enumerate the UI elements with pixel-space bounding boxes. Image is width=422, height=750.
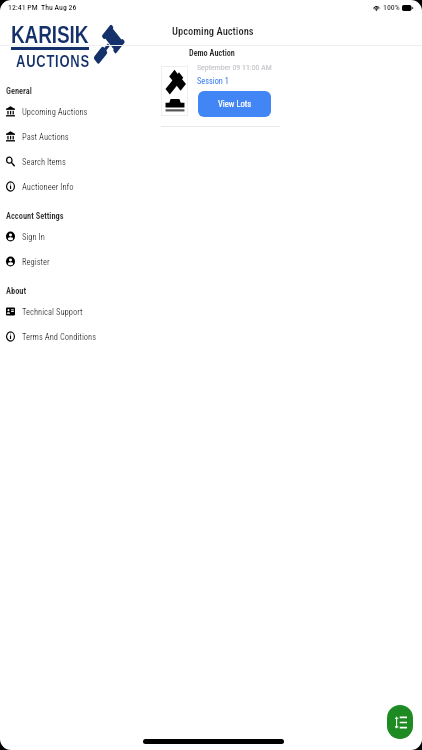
staticText: Auctioneer Info	[22, 182, 74, 192]
staticText: Terms And Conditions	[22, 332, 97, 342]
staticText: Technical Support	[22, 307, 83, 317]
button[interactable]: Sign In	[0, 224, 161, 249]
staticText: Session 1	[197, 76, 229, 86]
staticText: Register	[22, 257, 50, 267]
staticText: September 09 11:00 AM	[197, 63, 272, 72]
button[interactable]: Register	[0, 249, 161, 274]
staticText: Sign In	[22, 232, 45, 242]
button[interactable]: Sort list	[387, 705, 413, 739]
staticText: Search Items	[22, 157, 66, 167]
button[interactable]: Past Auctions	[0, 124, 161, 149]
staticText: Upcoming Auctions	[22, 107, 88, 117]
staticText: About	[6, 286, 27, 296]
button[interactable]: Auctioneer Info	[0, 174, 161, 199]
staticText: 12:41 PM	[8, 3, 38, 12]
button[interactable]: Search Items	[0, 149, 161, 174]
button[interactable]: Terms And Conditions	[0, 324, 161, 349]
staticText: Demo Auction	[189, 48, 235, 58]
staticText: Upcoming Auctions	[172, 25, 254, 37]
button[interactable]: Technical Support	[0, 299, 161, 324]
staticText: Thu Aug 26	[41, 3, 77, 12]
staticText: AUCTIONS	[16, 52, 90, 71]
staticText: 100%	[383, 3, 400, 12]
staticText: KARISIK	[11, 21, 89, 48]
button[interactable]: View Lots	[198, 91, 271, 117]
staticText: General	[6, 86, 32, 96]
button[interactable]: Upcoming Auctions	[0, 99, 161, 124]
staticText: Past Auctions	[22, 132, 69, 142]
staticText: View Lots	[218, 99, 252, 109]
staticText: Account Settings	[6, 211, 64, 221]
